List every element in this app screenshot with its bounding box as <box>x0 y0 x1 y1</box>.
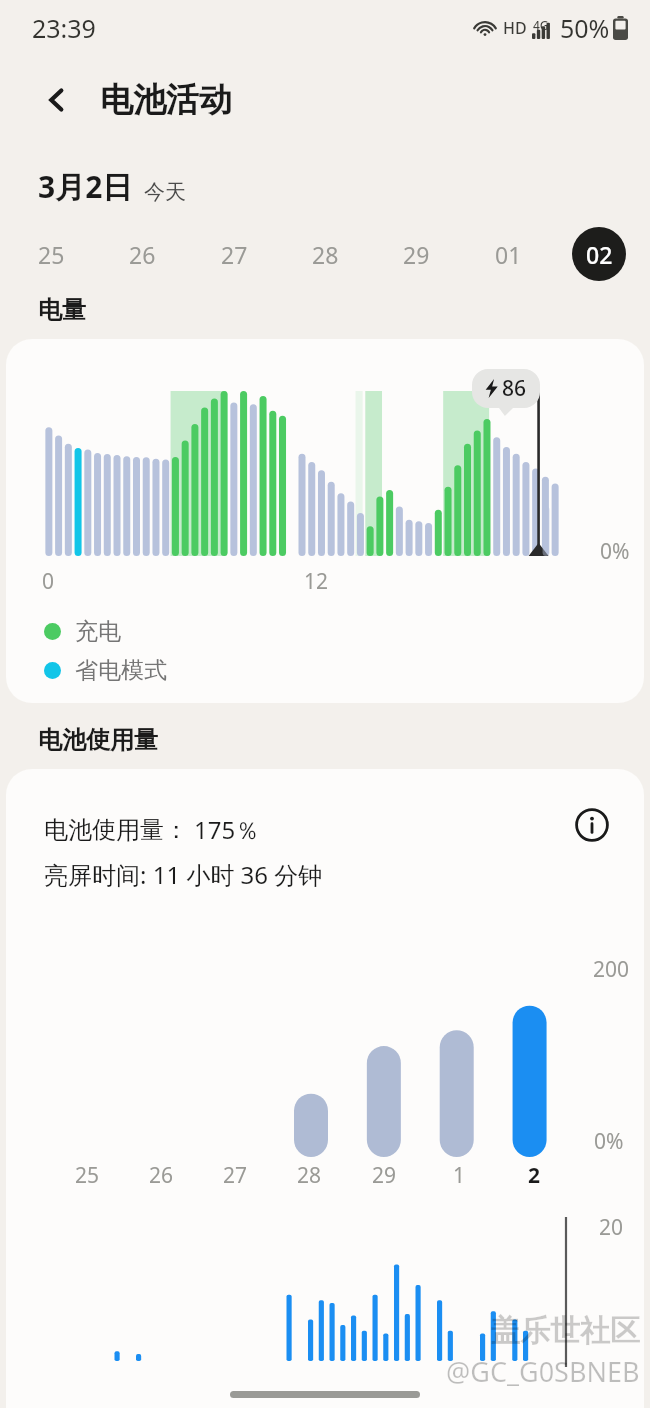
staticText: 今天 <box>144 179 186 205</box>
staticText: HD <box>503 17 527 39</box>
staticText: 12 <box>304 567 329 596</box>
staticText: 27 <box>223 1161 248 1190</box>
staticText: 0% <box>600 537 630 566</box>
staticText: 86 <box>502 374 527 403</box>
staticText: 23:39 <box>32 11 96 45</box>
staticText: 2 <box>528 1161 541 1190</box>
button[interactable]: 27 <box>207 227 261 281</box>
staticText: 电池使用量： <box>44 815 188 845</box>
staticText: 25 <box>75 1161 100 1190</box>
staticText: 3月2日 <box>38 166 133 207</box>
staticText: 26 <box>149 1161 174 1190</box>
staticText: 26 <box>129 239 156 270</box>
staticText: 亮屏时间: 11 小时 36 分钟 <box>44 858 323 891</box>
staticText: 28 <box>312 239 339 270</box>
staticText: 29 <box>403 239 430 270</box>
button[interactable]: 28 <box>298 227 352 281</box>
staticText: 25 <box>38 239 65 270</box>
staticText: 02 <box>586 239 613 270</box>
staticText: 200 <box>593 955 630 984</box>
staticText: 01 <box>495 239 522 270</box>
button[interactable]: 26 <box>115 227 169 281</box>
staticText: 29 <box>372 1161 397 1190</box>
button[interactable]: 0% <box>6 339 644 703</box>
staticText: 盖乐世社区 <box>490 1312 640 1350</box>
staticText: 27 <box>221 239 248 270</box>
button[interactable]: 25 <box>24 227 78 281</box>
staticText: 电量 <box>38 295 86 325</box>
staticText: 50% <box>560 11 610 45</box>
staticText: 省电模式 <box>75 656 167 685</box>
staticText: 20 <box>599 1213 624 1242</box>
button[interactable]: 01 <box>481 227 535 281</box>
staticText: @GC_G0SBNEB <box>446 1353 640 1390</box>
button[interactable]: Information <box>566 799 618 851</box>
staticText: 28 <box>297 1161 322 1190</box>
staticText: 0% <box>594 1127 624 1156</box>
staticText: 175％ <box>194 813 260 846</box>
button[interactable]: 02 <box>572 227 626 281</box>
button[interactable]: 电池使用量： <box>6 769 644 1408</box>
staticText: 4G <box>533 17 549 33</box>
staticText: 电池活动 <box>100 79 232 121</box>
button[interactable]: Back <box>30 73 84 127</box>
staticText: 1 <box>453 1161 466 1190</box>
button[interactable]: 29 <box>389 227 443 281</box>
staticText: 电池使用量 <box>38 725 158 755</box>
staticText: 0 <box>42 567 55 596</box>
staticText: 充电 <box>75 617 121 646</box>
